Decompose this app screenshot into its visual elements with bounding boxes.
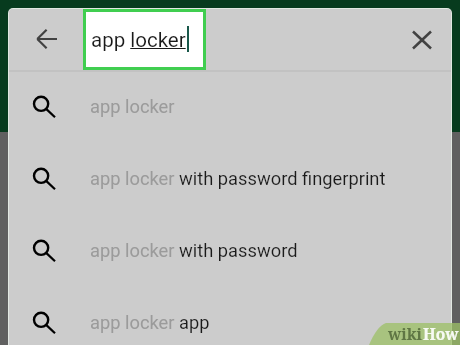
staticText: app locker with password fingerprint bbox=[90, 168, 386, 189]
staticText: app locker with password bbox=[90, 240, 298, 261]
button[interactable]: Clear search bbox=[400, 18, 444, 62]
staticText: app locker bbox=[90, 96, 175, 117]
button[interactable]: app locker bbox=[86, 12, 203, 67]
staticText: app locker app bbox=[90, 312, 210, 333]
button[interactable]: Back bbox=[25, 17, 69, 61]
button[interactable]: app locker with password bbox=[9, 214, 451, 286]
button[interactable]: app locker with password fingerprint bbox=[9, 142, 451, 214]
staticText: app locker bbox=[91, 28, 186, 52]
button[interactable]: app locker app bbox=[9, 286, 451, 345]
staticText: How bbox=[423, 323, 459, 344]
staticText: wiki bbox=[388, 323, 423, 344]
button[interactable]: app locker bbox=[9, 70, 451, 142]
